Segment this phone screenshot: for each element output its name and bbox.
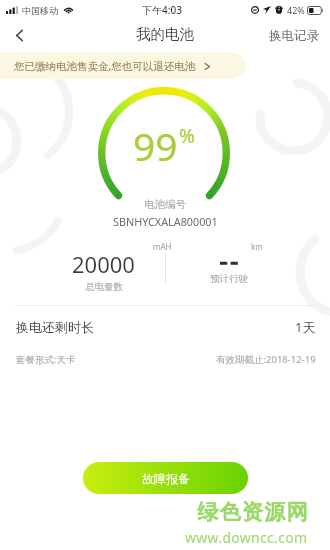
- staticText: SBNHYCXALA800001: [113, 214, 218, 229]
- button[interactable]: 您已缴纳电池售卖金,您也可以退还电池: [0, 52, 245, 79]
- button[interactable]: 换电记录: [257, 22, 330, 52]
- staticText: 有效期截止:2018-12-19: [216, 353, 316, 366]
- staticText: www.downcc.com: [185, 528, 308, 547]
- button[interactable]: 故障报备: [83, 462, 248, 494]
- staticText: mAH: [153, 241, 172, 252]
- staticText: 套餐形式:天卡: [16, 353, 76, 366]
- staticText: 换电记录: [269, 28, 319, 44]
- staticText: 99: [133, 119, 178, 172]
- staticText: 1天: [295, 318, 316, 336]
- button[interactable]: Back: [2, 18, 36, 52]
- staticText: 故障报备: [142, 471, 190, 486]
- staticText: 绿色资源网: [197, 499, 308, 525]
- staticText: km: [251, 241, 263, 252]
- staticText: 我的电池: [136, 25, 194, 43]
- staticText: 总电量数: [85, 281, 123, 293]
- staticText: 中国移动: [22, 5, 58, 16]
- staticText: 20000: [72, 249, 135, 279]
- staticText: 电池编号: [144, 198, 186, 211]
- staticText: 下午4:03: [142, 3, 182, 17]
- staticText: 预计行驶: [210, 273, 248, 285]
- staticText: 42%: [287, 4, 305, 16]
- staticText: %: [179, 123, 195, 149]
- staticText: 换电还剩时长: [16, 319, 94, 335]
- staticText: 您已缴纳电池售卖金,您也可以退还电池: [14, 59, 196, 73]
